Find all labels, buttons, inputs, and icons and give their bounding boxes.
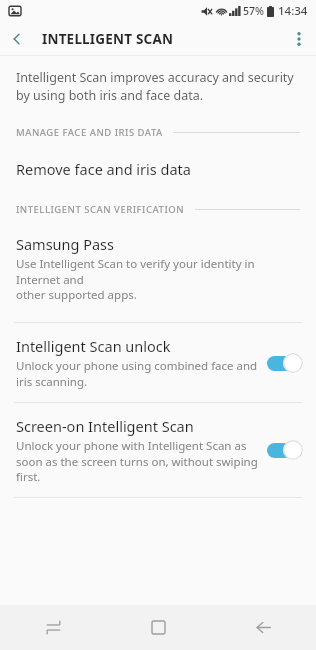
staticText: Use Intelligent Scan to verify your iden… (16, 256, 300, 302)
staticText: Intelligent Scan improves accuracy and s… (16, 69, 294, 104)
button[interactable]: Recents (0, 605, 106, 650)
button[interactable]: Back (211, 605, 316, 650)
staticText: INTELLIGENT SCAN VERIFICATION (16, 203, 185, 216)
staticText: Samsung Pass (16, 234, 115, 254)
staticText: Screen-on Intelligent Scan (16, 416, 194, 436)
staticText: MANAGE FACE AND IRIS DATA (16, 126, 163, 139)
staticText: Intelligent Scan unlock (16, 336, 171, 356)
button[interactable]: Intelligent Scan unlock (0, 323, 316, 402)
staticText: INTELLIGENT SCAN (42, 30, 174, 48)
button[interactable]: Navigate up (0, 22, 34, 55)
staticText: Unlock your phone with Intelligent Scan … (16, 438, 258, 484)
button[interactable]: Samsung Pass (0, 231, 316, 312)
staticText: Unlock your phone using combined face an… (16, 358, 258, 389)
button[interactable]: Toggle setting (267, 353, 303, 373)
staticText: 14:34 (278, 3, 308, 19)
staticText: 57% (243, 4, 264, 18)
staticText: Remove face and iris data (16, 159, 191, 179)
button[interactable]: Home (106, 605, 211, 650)
button[interactable]: More options (282, 22, 316, 55)
button[interactable]: Remove face and iris data (0, 153, 316, 189)
button[interactable]: Screen-on Intelligent Scan (0, 403, 316, 497)
button[interactable]: Toggle setting (267, 440, 303, 460)
